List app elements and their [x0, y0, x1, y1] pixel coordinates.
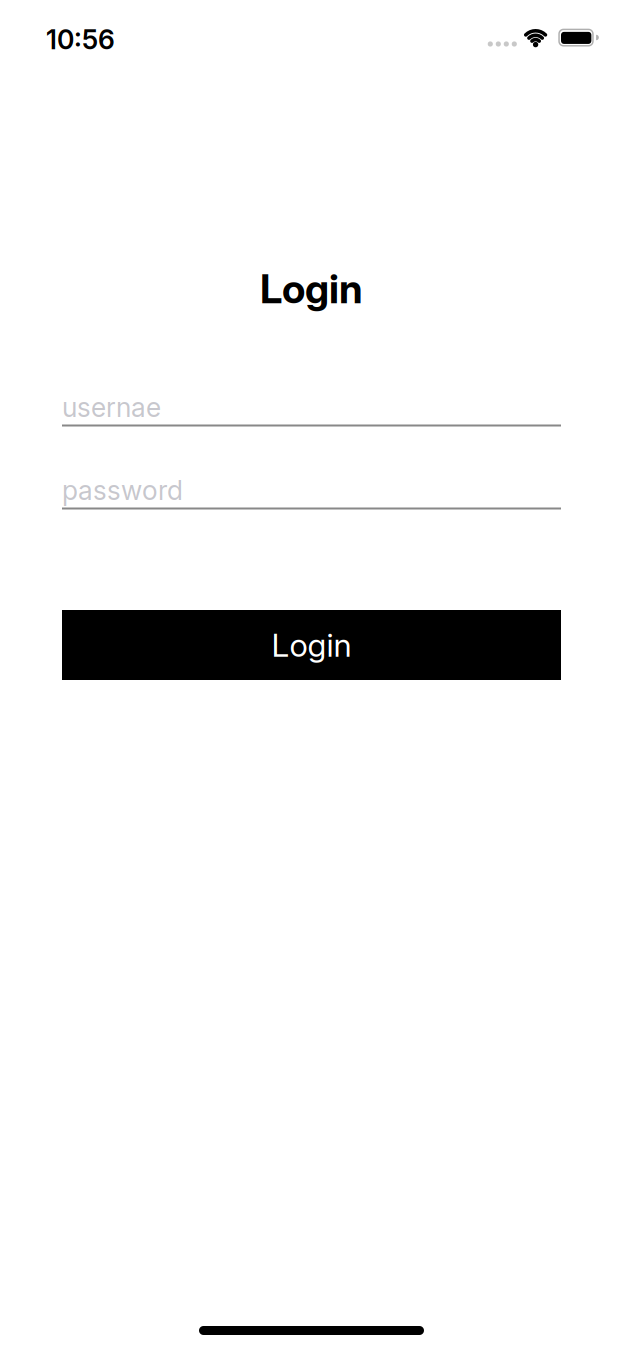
staticText: password — [62, 474, 183, 506]
button[interactable]: password — [62, 457, 561, 509]
button[interactable]: usernae — [62, 374, 561, 426]
button[interactable]: Login — [62, 610, 561, 680]
staticText: Login — [271, 626, 351, 664]
staticText: 10:56 — [46, 23, 115, 56]
staticText: usernae — [62, 391, 161, 423]
staticText: Login — [260, 264, 363, 313]
